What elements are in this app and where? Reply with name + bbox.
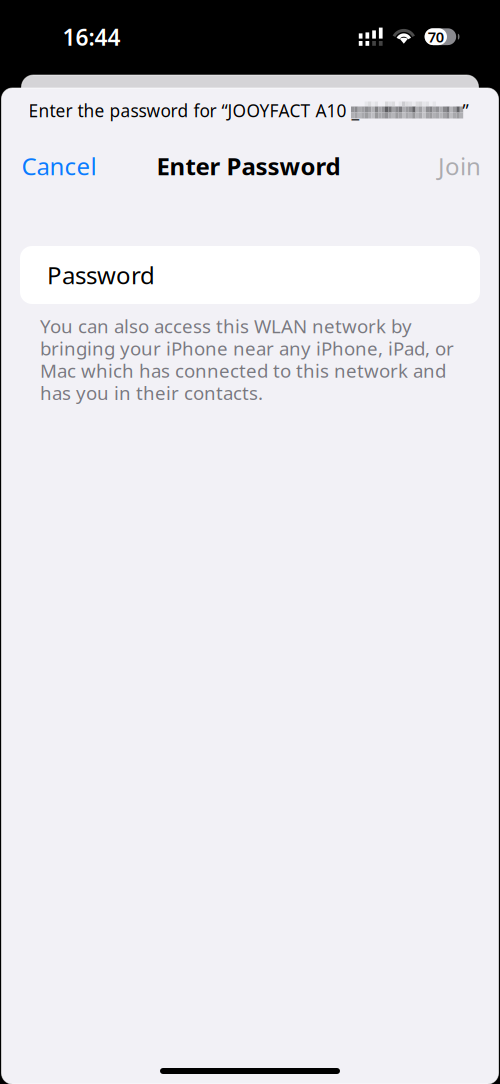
staticText: 16:44 bbox=[62, 22, 120, 52]
button[interactable]: Cancel bbox=[12, 139, 105, 193]
staticText: 70 bbox=[428, 27, 444, 46]
staticText: ” bbox=[462, 99, 468, 122]
staticText: Join bbox=[438, 150, 481, 182]
button[interactable]: Join bbox=[427, 139, 492, 193]
staticText: Password bbox=[47, 259, 155, 291]
staticText: Enter Password bbox=[156, 150, 340, 182]
staticText: Enter the password for “JOOYFACT A10 _ bbox=[28, 99, 359, 122]
button[interactable]: Password bbox=[20, 246, 480, 304]
staticText: You can also access this WLAN network by… bbox=[40, 313, 454, 405]
staticText: Cancel bbox=[21, 150, 96, 182]
